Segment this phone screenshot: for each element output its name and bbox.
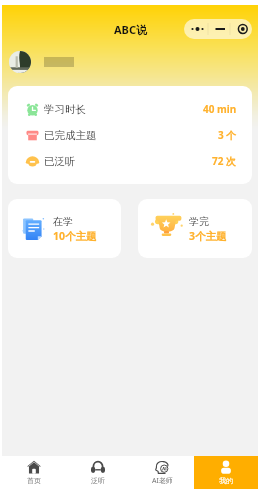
button[interactable]: 学完 <box>138 199 252 258</box>
staticText: 首页 <box>27 476 41 485</box>
button[interactable]: 已完成主题 <box>8 122 252 148</box>
staticText: 泛听 <box>91 476 105 485</box>
staticText: 我的 <box>219 476 233 485</box>
staticText: 学习时长 <box>44 103 86 116</box>
button[interactable]: 学习时长 <box>8 96 252 122</box>
staticText: 已泛听 <box>44 155 76 168</box>
button[interactable]: 我的 <box>194 456 258 489</box>
staticText: 学完 <box>189 215 209 228</box>
staticText: AI老师 <box>152 476 173 486</box>
button[interactable]: 首页 <box>2 456 66 489</box>
staticText: 72 次 <box>212 154 237 168</box>
button[interactable]: 已泛听 <box>8 148 252 174</box>
staticText: 3 个 <box>218 128 237 142</box>
button[interactable]: AI老师 <box>130 456 194 489</box>
staticText: 40 min <box>203 102 237 116</box>
button[interactable] <box>9 51 74 73</box>
button[interactable]: 泛听 <box>66 456 130 489</box>
button[interactable]: 在学 <box>8 199 121 258</box>
staticText: 3个主题 <box>189 229 227 243</box>
staticText: ABC说 <box>114 22 147 37</box>
staticText: 10个主题 <box>53 229 97 243</box>
staticText: 在学 <box>53 215 73 228</box>
button[interactable]: More options <box>184 19 252 39</box>
staticText: 已完成主题 <box>44 129 97 142</box>
